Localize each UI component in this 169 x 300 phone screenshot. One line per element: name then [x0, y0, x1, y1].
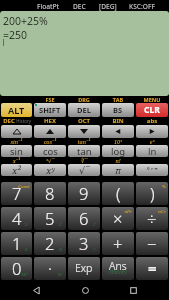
button[interactable]: xʸ: [34, 164, 66, 176]
staticText: DEC: [73, 2, 86, 11]
button[interactable]: 7: [1, 182, 32, 205]
staticText: ln: [148, 145, 157, 157]
staticText: x²: [12, 164, 21, 176]
button[interactable]: =: [136, 257, 168, 280]
staticText: ∛‾: [67, 157, 101, 164]
button[interactable]: ° ′ ″: [136, 164, 168, 176]
staticText: 6: [79, 207, 89, 229]
button[interactable]: 1: [1, 232, 32, 255]
staticText: 1: [12, 232, 22, 254]
staticText: DEC: [3, 117, 15, 125]
staticText: =250: [3, 28, 28, 42]
staticText: TAB: [101, 96, 135, 103]
staticText: Ans: [109, 259, 127, 273]
staticText: OCT: [67, 117, 101, 125]
staticText: cos⁻¹: [33, 138, 67, 145]
staticText: ×: [113, 207, 123, 229]
button[interactable]: +: [102, 232, 134, 255]
staticText: BIN: [101, 117, 135, 125]
button[interactable]: 6: [68, 207, 100, 230]
button[interactable]: SHIFT: [34, 103, 66, 117]
button[interactable]: ×: [102, 207, 134, 230]
button[interactable]: Home: [72, 281, 98, 300]
staticText: CLR: [144, 104, 160, 116]
button[interactable]: (: [102, 182, 134, 205]
staticText: π: [115, 164, 122, 176]
button[interactable]: Recent apps: [120, 281, 146, 300]
button[interactable]: Up: [34, 125, 66, 138]
staticText: nPr: [124, 208, 132, 214]
staticText: 10ˣ: [101, 138, 135, 145]
staticText: MENU: [135, 96, 169, 103]
staticText: 2: [45, 232, 55, 254]
staticText: %: [162, 183, 166, 189]
button[interactable]: x²: [1, 164, 32, 176]
staticText: DRG: [67, 96, 101, 103]
button[interactable]: −: [136, 232, 168, 255]
staticText: MC: [21, 271, 28, 277]
button[interactable]: Page up: [1, 125, 32, 138]
button[interactable]: ÷: [136, 207, 168, 230]
button[interactable]: DEL: [68, 103, 100, 117]
staticText: 3: [79, 232, 89, 254]
button[interactable]: log: [102, 145, 134, 157]
staticText: (: [116, 182, 121, 204]
staticText: +: [113, 232, 123, 254]
button[interactable]: Down: [68, 125, 100, 138]
button[interactable]: 0: [1, 257, 32, 280]
staticText: C: [93, 246, 96, 252]
staticText: log: [111, 145, 126, 157]
staticText: 8: [45, 182, 55, 204]
staticText: ° ′ ″: [147, 166, 158, 175]
staticText: −: [147, 232, 157, 254]
staticText: tan⁻¹: [67, 138, 101, 145]
staticText: n!: [101, 157, 135, 164]
staticText: 9: [79, 182, 89, 204]
staticText: 5: [45, 207, 55, 229]
staticText: Exp: [75, 261, 93, 275]
button[interactable]: tan: [68, 145, 100, 157]
button[interactable]: CLR: [136, 103, 168, 117]
button[interactable]: Ans: [102, 257, 134, 280]
button[interactable]: Back: [23, 281, 49, 300]
button[interactable]: sin: [1, 145, 32, 157]
staticText: B: [59, 246, 62, 252]
button[interactable]: π: [102, 164, 134, 176]
staticText: History: [109, 269, 127, 276]
staticText: D: [24, 221, 28, 227]
button[interactable]: cos: [34, 145, 66, 157]
staticText: ·: [48, 257, 53, 279]
button[interactable]: 4: [1, 207, 32, 230]
staticText: √‾: [79, 164, 90, 176]
button[interactable]: 2: [34, 232, 66, 255]
staticText: ÷: [147, 207, 157, 229]
staticText: E: [59, 221, 62, 227]
staticText: 7: [12, 182, 22, 204]
staticText: ALT: [8, 104, 25, 116]
button[interactable]: 5: [34, 207, 66, 230]
staticText: FSE: [33, 96, 67, 103]
staticText: DEL: [77, 105, 91, 115]
staticText: cos: [43, 145, 58, 157]
staticText: M: [57, 271, 62, 277]
button[interactable]: Exp: [68, 257, 100, 280]
button[interactable]: 8: [34, 182, 66, 205]
staticText: eˣ: [135, 138, 169, 145]
staticText: SHIFT: [39, 105, 61, 115]
button[interactable]: Left: [102, 125, 134, 138]
staticText: sin⁻¹: [0, 138, 33, 145]
button[interactable]: ALT: [1, 103, 32, 117]
button[interactable]: √‾: [68, 164, 100, 176]
button[interactable]: 9: [68, 182, 100, 205]
staticText: 200+25%: [3, 14, 48, 28]
button[interactable]: BS: [102, 103, 134, 117]
staticText: KSC:OFF: [129, 2, 155, 11]
button[interactable]: 3: [68, 232, 100, 255]
button[interactable]: ·: [34, 257, 66, 280]
staticText: ˣ√‾: [33, 157, 67, 164]
button[interactable]: ): [136, 182, 168, 205]
staticText: 0: [12, 257, 22, 279]
button[interactable]: ln: [136, 145, 168, 157]
button[interactable]: Right: [136, 125, 168, 138]
